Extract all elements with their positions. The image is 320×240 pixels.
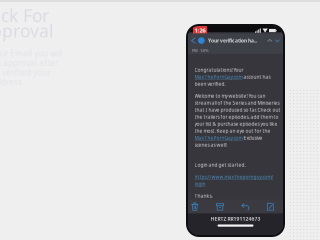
- button[interactable]: Compose: [264, 199, 277, 213]
- staticText: that I have produced so far. Check out: [194, 107, 280, 113]
- staticText: your Email you will: [0, 48, 62, 59]
- staticText: login: [194, 181, 205, 187]
- button[interactable]: Delete: [188, 199, 201, 213]
- staticText: ve verified your: [0, 67, 50, 78]
- staticText: Welcome to my website! You can: [194, 93, 265, 99]
- staticText: pproval: [0, 19, 53, 43]
- staticText: your list & purchase episodes you like: [194, 121, 277, 127]
- staticText: account has: [242, 74, 270, 80]
- staticText: MaxThePornGuy.com: [194, 74, 242, 80]
- staticText: the most. Keep an eye out for the: [194, 128, 270, 134]
- button[interactable]: Reply: [239, 199, 252, 213]
- staticText: Thanks,: [194, 193, 212, 199]
- staticText: scenes as well!: [194, 142, 226, 148]
- staticText: Congratulations! Your: [194, 67, 243, 73]
- staticText: Exclusive: [242, 135, 262, 141]
- staticText: PM 1:0%: [192, 48, 209, 53]
- staticText: eck For: [0, 4, 49, 27]
- staticText: 1:26: [195, 26, 206, 34]
- button[interactable]: Next message: [273, 34, 281, 47]
- staticText: stream all of the Series and Miniseries: [194, 100, 279, 106]
- staticText: an approval after: [0, 57, 58, 68]
- staticText: Your verification ha...: [208, 37, 257, 44]
- button[interactable]: Archive: [214, 199, 227, 213]
- button[interactable]: Back: [189, 34, 198, 47]
- staticText: Login and get started.: [194, 162, 245, 168]
- button[interactable]: Previous message: [266, 34, 273, 47]
- staticText: https://www.maxthepornguy.com/: [194, 174, 273, 180]
- staticText: the trailers for episodes, add them to: [194, 114, 278, 120]
- staticText: HERTZ RR191124673: [210, 216, 260, 222]
- staticText: MaxThePornGuy.com: [194, 135, 242, 141]
- staticText: address: [0, 76, 22, 88]
- staticText: been verified.: [194, 81, 225, 87]
